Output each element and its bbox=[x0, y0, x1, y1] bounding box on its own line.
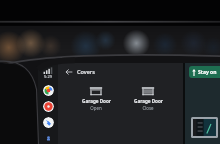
button[interactable]: Phone bbox=[43, 117, 54, 128]
button[interactable]: Back bbox=[63, 66, 74, 77]
button[interactable]: Secondary display bbox=[193, 119, 216, 136]
button[interactable]: Stay on bbox=[189, 66, 220, 78]
staticText: Covers bbox=[77, 68, 95, 75]
staticText: Open bbox=[90, 105, 102, 111]
button[interactable]: Garage Door bbox=[75, 84, 117, 113]
button[interactable]: Maps bbox=[43, 85, 54, 96]
staticText: Garage Door bbox=[82, 98, 111, 104]
button[interactable]: Media bbox=[43, 101, 54, 112]
staticText: Garage Door bbox=[134, 98, 163, 104]
button[interactable]: All apps bbox=[46, 136, 51, 141]
button[interactable]: Garage Door bbox=[127, 84, 169, 113]
staticText: 5:29 bbox=[44, 74, 52, 79]
staticText: Close bbox=[142, 105, 154, 111]
staticText: Stay on bbox=[198, 69, 217, 76]
